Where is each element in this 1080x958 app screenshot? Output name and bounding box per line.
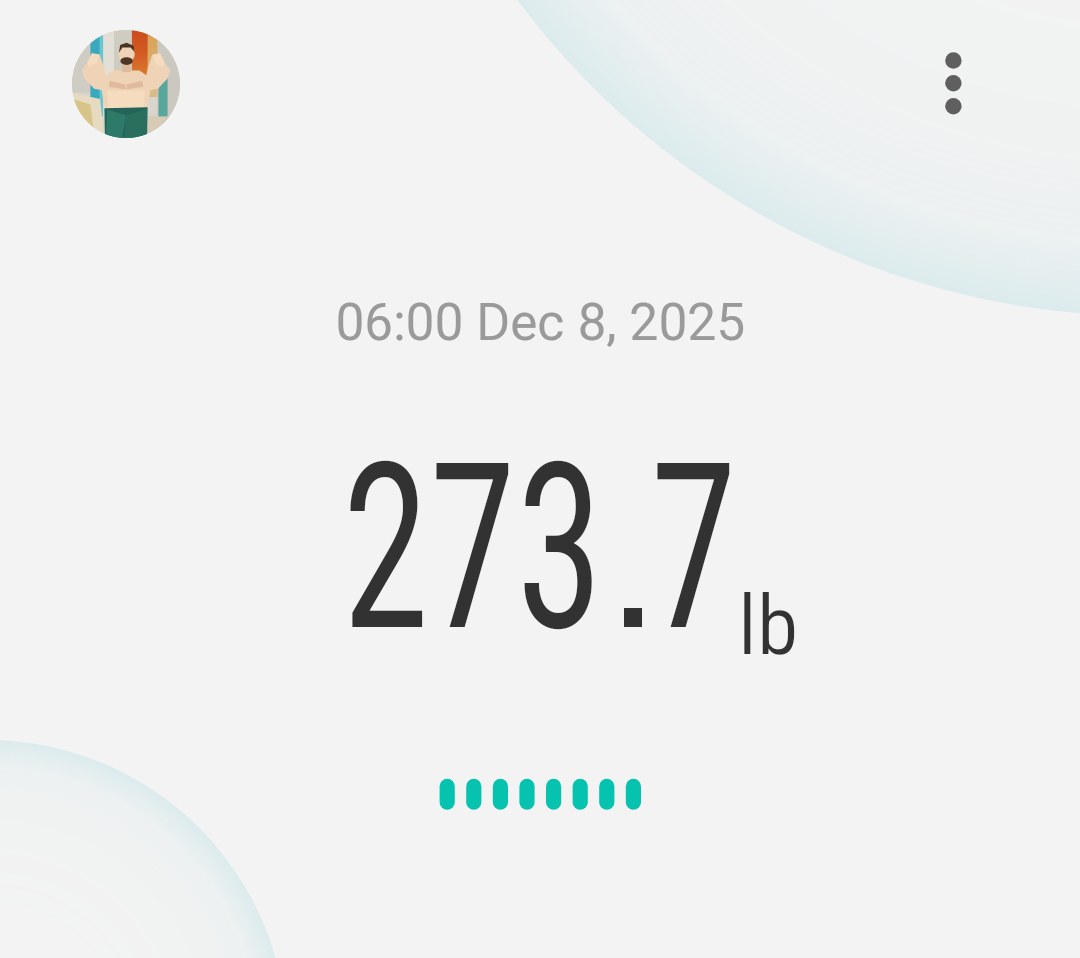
button[interactable]: Profile photo [72,30,180,138]
button[interactable]: More options [905,35,1001,131]
button[interactable]: Measurement progress [430,770,660,820]
